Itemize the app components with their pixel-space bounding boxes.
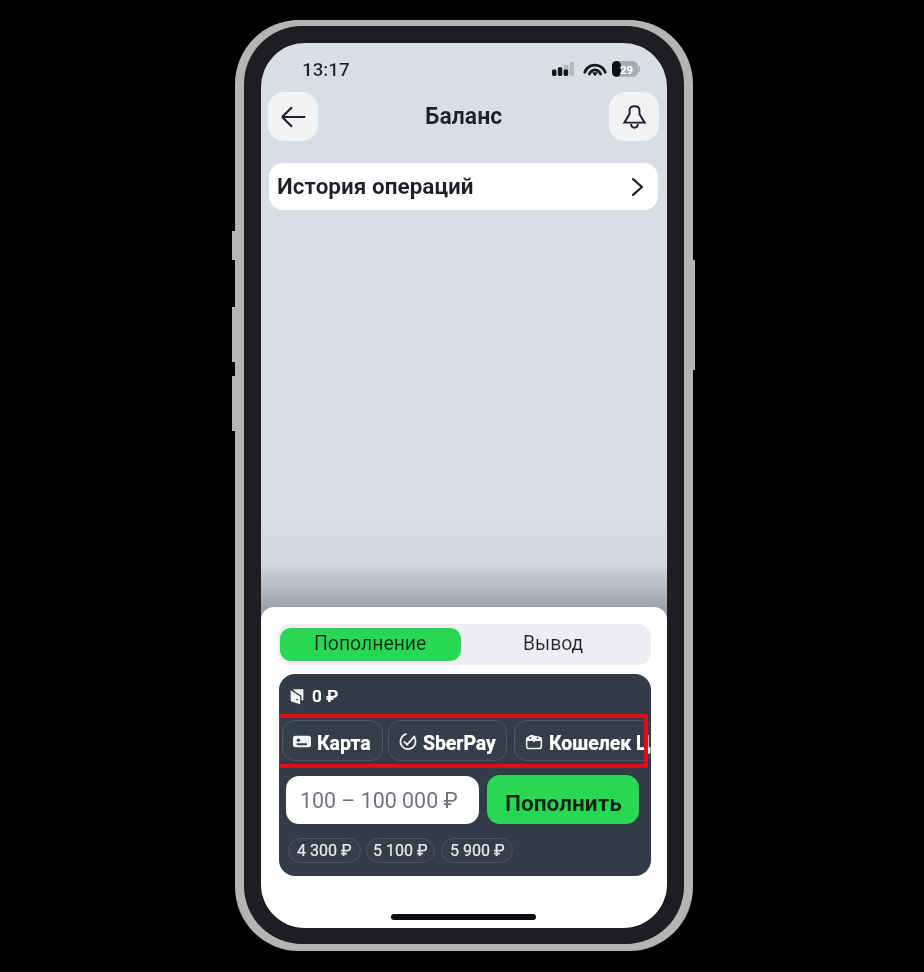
staticText: 100 – 100 000 ₽ bbox=[300, 788, 458, 813]
staticText: 4 300 ₽ bbox=[297, 841, 352, 860]
button[interactable]: 5 900 ₽ bbox=[441, 838, 513, 863]
button[interactable]: Назад bbox=[268, 92, 318, 141]
staticText: SberPay bbox=[423, 732, 496, 755]
staticText: Карта bbox=[317, 732, 371, 755]
staticText: 0 ₽ bbox=[312, 686, 339, 706]
button[interactable]: SberPay bbox=[388, 720, 507, 761]
staticText: Вывод bbox=[523, 632, 584, 655]
button[interactable]: Уведомления bbox=[609, 92, 659, 141]
button[interactable]: Карта bbox=[282, 720, 383, 761]
button[interactable]: Кошелек ЦУПИС bbox=[514, 720, 651, 761]
staticText: Баланс bbox=[425, 103, 503, 130]
button[interactable]: 4 300 ₽ bbox=[288, 838, 361, 863]
button[interactable]: 5 100 ₽ bbox=[366, 838, 435, 863]
staticText: 13:17 bbox=[302, 59, 350, 81]
staticText: 5 900 ₽ bbox=[450, 841, 505, 860]
button[interactable]: Пополнить bbox=[487, 775, 639, 824]
staticText: Кошелек ЦУПИС bbox=[549, 732, 651, 755]
staticText: Пополнение bbox=[314, 632, 427, 655]
staticText: История операций bbox=[277, 173, 474, 199]
button[interactable]: Пополнение bbox=[280, 628, 461, 661]
staticText: 5 100 ₽ bbox=[373, 841, 428, 860]
staticText: 29 bbox=[620, 63, 634, 76]
staticText: Пополнить bbox=[505, 790, 622, 816]
button[interactable]: История операций bbox=[269, 163, 658, 210]
button[interactable]: 100 – 100 000 ₽ bbox=[286, 776, 479, 824]
button[interactable]: Вывод bbox=[460, 624, 646, 665]
